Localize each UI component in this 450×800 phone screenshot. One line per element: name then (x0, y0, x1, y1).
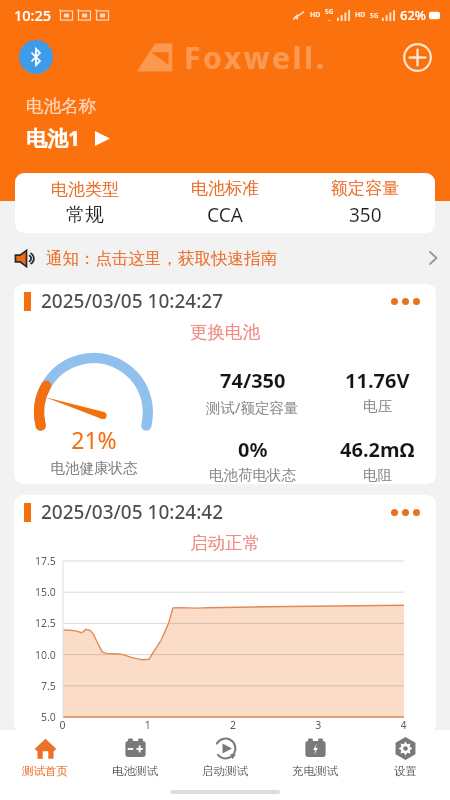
button[interactable]: 电池类型 (15, 173, 435, 233)
staticText: 电池1 (26, 124, 81, 153)
staticText: 启动测试 (202, 764, 248, 778)
staticText: 5G (325, 7, 334, 16)
staticText: 常规 (66, 203, 104, 227)
staticText: 350 (349, 202, 382, 228)
staticText: .. (328, 16, 331, 23)
button[interactable]: Add battery (401, 41, 433, 73)
other: Open guide (429, 250, 438, 266)
staticText: 启动正常 (14, 532, 436, 554)
staticText: 74/350 (220, 367, 286, 394)
staticText: 测试首页 (22, 764, 68, 778)
button[interactable]: 测试首页 (0, 730, 90, 784)
staticText: 11.76V (345, 367, 410, 394)
staticText: 额定容量 (331, 178, 399, 199)
staticText: 通知：点击这里，获取快速指南 (46, 248, 277, 269)
staticText: 5G (370, 11, 379, 20)
staticText: 电池类型 (51, 179, 119, 200)
staticText: 电池测试 (112, 764, 158, 778)
button[interactable]: 设置 (360, 730, 450, 784)
staticText: 电池标准 (191, 178, 259, 199)
staticText: 电池荷电状态 (209, 466, 296, 484)
staticText: 电压 (363, 397, 392, 415)
staticText: Foxwell. (184, 37, 327, 78)
staticText: 46.2mΩ (340, 436, 415, 463)
staticText: 电池名称 (26, 95, 96, 117)
staticText: 0% (238, 436, 268, 463)
button[interactable]: 启动测试 (180, 730, 270, 784)
staticText: 62% (400, 6, 426, 24)
staticText: 更换电池 (14, 321, 436, 343)
staticText: 充电测试 (292, 764, 338, 778)
staticText: HD (310, 10, 321, 20)
staticText: 21% (14, 424, 174, 455)
staticText: 测试/额定容量 (206, 397, 299, 417)
staticText: 2025/03/05 10:24:27 (41, 288, 224, 314)
button[interactable]: 通知：点击这里，获取快速指南 (15, 241, 438, 275)
staticText: 电池健康状态 (14, 459, 174, 477)
button[interactable]: 充电测试 (270, 730, 360, 784)
staticText: 2025/03/05 10:24:42 (41, 499, 224, 525)
staticText: 设置 (394, 764, 417, 778)
staticText: HD (355, 10, 366, 20)
button[interactable]: More options (391, 509, 420, 516)
button[interactable]: 电池测试 (90, 730, 180, 784)
button[interactable]: More options (391, 298, 420, 305)
button[interactable]: 电池1 (26, 124, 110, 153)
staticText: 电阻 (363, 466, 392, 484)
button[interactable]: Bluetooth (19, 40, 53, 74)
staticText: CCA (207, 202, 243, 228)
staticText: 10:25 (14, 5, 52, 25)
